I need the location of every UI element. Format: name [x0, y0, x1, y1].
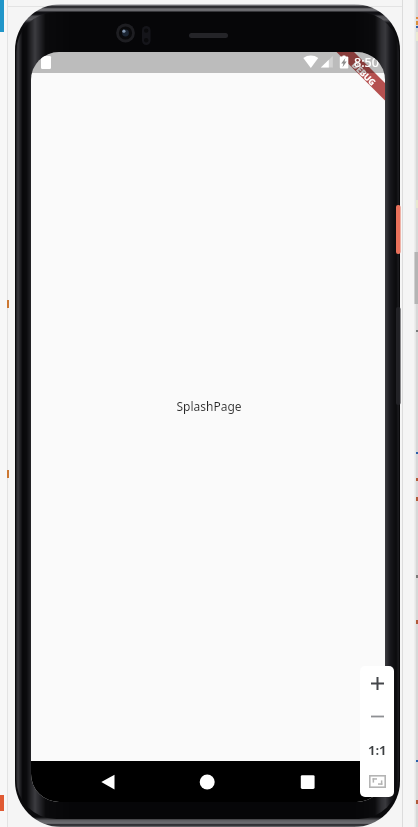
button[interactable]: Home	[177, 761, 237, 802]
staticText: DEBUG	[349, 59, 379, 89]
button[interactable]: Back	[88, 761, 148, 802]
button[interactable]: Recent apps	[271, 761, 331, 802]
staticText: 8:50	[354, 54, 379, 71]
button[interactable]: Zoom out	[360, 700, 394, 733]
staticText: 1:1	[368, 741, 387, 759]
button[interactable]: 1:1	[360, 733, 394, 766]
button[interactable]: SplashPage	[176, 398, 242, 414]
button[interactable]: Fit to screen	[360, 766, 394, 797]
button[interactable]: Zoom in	[360, 666, 394, 700]
